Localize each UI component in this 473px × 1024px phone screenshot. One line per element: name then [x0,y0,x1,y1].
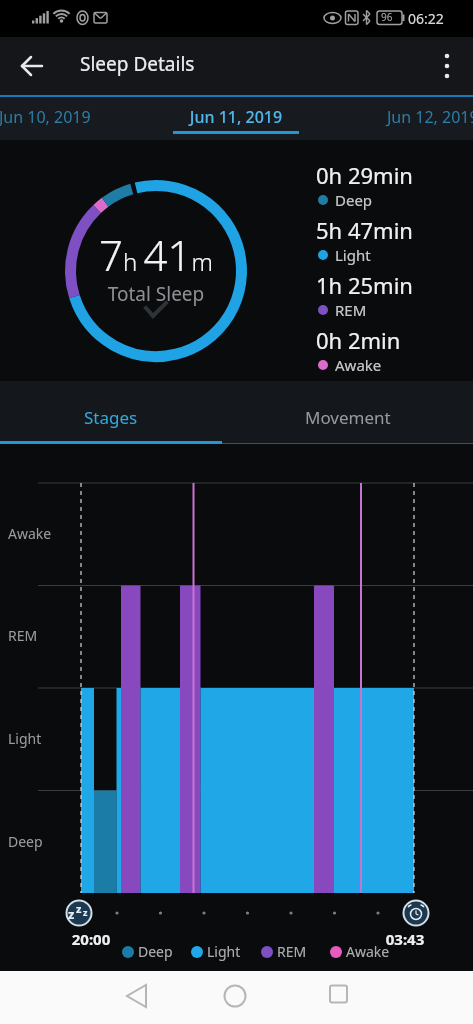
staticText: Deep [8,832,43,851]
button[interactable]: Stages [0,381,222,444]
button[interactable]: Jun 10, 2019 [0,106,91,128]
staticText: 0h 29min [316,160,413,190]
staticText: Deep [335,190,373,210]
staticText: z [68,905,75,923]
button[interactable] [295,971,375,1024]
staticText: Awake [335,355,382,375]
button[interactable]: Jun 11, 2019 [163,106,309,128]
button[interactable] [425,44,469,88]
staticText: Light [8,729,42,748]
button[interactable] [97,971,177,1024]
staticText: Movement [305,406,391,429]
staticText: Light [335,245,371,265]
staticText: 0h 2min [316,325,401,355]
staticText: 06:22 [408,9,444,28]
staticText: Total Sleep [56,281,256,307]
button[interactable]: Jun 12, 2019 [387,106,473,128]
staticText: 96 [381,10,393,24]
staticText: 5h 47min [316,215,413,245]
staticText: Sleep Details [80,51,195,77]
staticText: z [83,906,88,918]
staticText: 7h 41m [56,226,256,283]
staticText: Stages [84,406,138,429]
staticText: Deep [138,942,173,961]
staticText: 1h 25min [316,270,413,300]
staticText: 03:43 [380,929,430,949]
staticText: REM [277,942,307,961]
button[interactable] [196,971,276,1024]
button[interactable] [8,44,52,88]
staticText: Awake [346,942,390,961]
staticText: REM [8,626,38,645]
button[interactable]: Movement [222,381,473,444]
staticText: 20:00 [66,929,116,949]
staticText: REM [335,300,367,320]
staticText: z [76,901,82,916]
staticText: Light [207,942,241,961]
staticText: Awake [8,524,52,543]
